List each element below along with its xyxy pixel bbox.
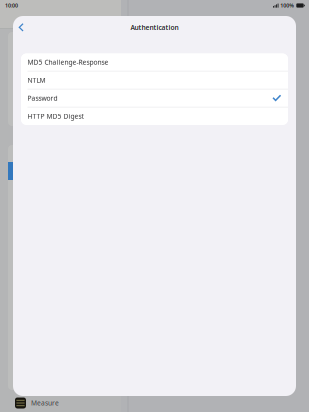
staticText: 100% xyxy=(280,2,294,9)
button[interactable]: HTTP MD5 Digest xyxy=(21,107,288,125)
staticText: Authentication xyxy=(130,23,178,32)
button[interactable]: NTLM xyxy=(21,71,288,89)
staticText: 10:00 xyxy=(5,2,18,9)
button[interactable]: Back xyxy=(13,16,29,39)
button[interactable]: MD5 Challenge-Response xyxy=(21,53,288,71)
staticText: HTTP MD5 Digest xyxy=(27,112,83,121)
staticText: Password xyxy=(27,94,57,103)
staticText: MD5 Challenge-Response xyxy=(27,58,108,67)
button[interactable]: Password xyxy=(21,89,288,107)
staticText: Measure xyxy=(31,399,59,407)
staticText: NTLM xyxy=(27,76,45,85)
